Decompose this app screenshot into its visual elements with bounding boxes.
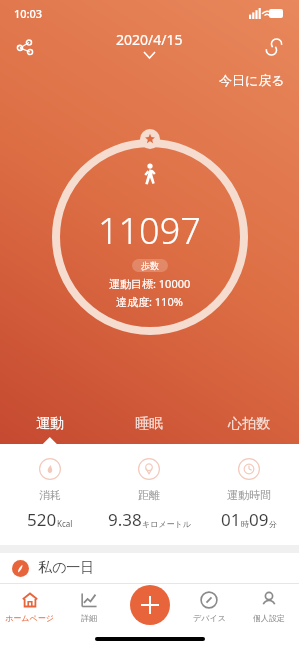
button[interactable]: 私の一日 <box>0 553 299 583</box>
button[interactable]: Link device <box>257 30 291 64</box>
staticText: 今日に戻る <box>219 72 285 88</box>
staticText: 9.38 <box>108 508 142 531</box>
staticText: 距離 <box>138 488 160 502</box>
button[interactable]: 距離 <box>99 444 199 545</box>
staticText: Kcal <box>57 518 73 529</box>
button[interactable]: 詳細 <box>59 584 119 628</box>
button[interactable]: ホームページ <box>0 584 59 628</box>
staticText: 分 <box>269 519 277 529</box>
button[interactable]: 個人設定 <box>239 584 299 628</box>
staticText: 運動 <box>36 415 64 433</box>
staticText: 私の一日 <box>38 559 95 577</box>
staticText: 心拍数 <box>228 415 270 433</box>
staticText: 時 <box>241 519 249 529</box>
staticText: ホームページ <box>5 613 54 623</box>
staticText: 10:03 <box>14 6 43 21</box>
staticText: キロメートル <box>142 519 191 529</box>
staticText: 09 <box>249 508 269 531</box>
button[interactable]: Add <box>130 585 170 625</box>
staticText: 睡眠 <box>135 415 163 433</box>
staticText: 運動目標: 10000 <box>109 276 191 291</box>
button[interactable]: 消耗 <box>0 444 99 545</box>
staticText: 消耗 <box>39 488 61 502</box>
button[interactable]: デバイス <box>179 584 239 628</box>
button[interactable]: Share <box>8 30 42 64</box>
staticText: 運動時間 <box>227 488 271 502</box>
button[interactable]: 2020/4/15 <box>116 30 183 58</box>
staticText: 歩数 <box>141 260 159 271</box>
staticText: 達成度: 110% <box>116 294 183 309</box>
staticText: 11097 <box>98 206 201 255</box>
button[interactable]: 心拍数 <box>199 404 299 444</box>
staticText: デバイス <box>193 613 226 623</box>
button[interactable]: 運動 <box>0 404 99 444</box>
button[interactable]: 運動時間 <box>199 444 299 545</box>
staticText: 個人設定 <box>253 613 285 623</box>
button[interactable]: 睡眠 <box>99 404 199 444</box>
staticText: 520 <box>27 508 57 531</box>
button[interactable]: 今日に戻る <box>219 72 285 88</box>
staticText: 01 <box>221 508 241 531</box>
staticText: 詳細 <box>81 613 97 623</box>
staticText: 2020/4/15 <box>116 30 183 49</box>
